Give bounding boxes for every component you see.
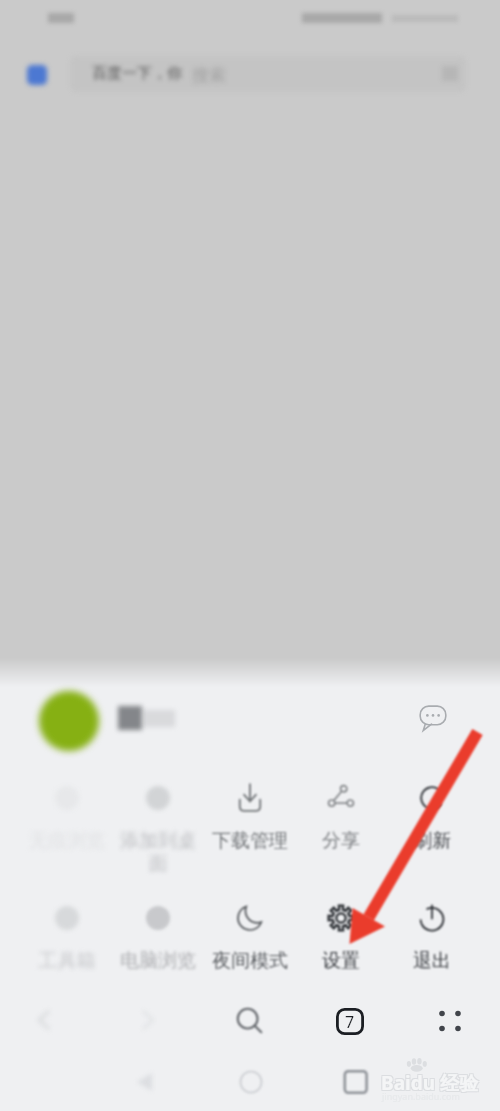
staticText: 7 <box>345 1011 355 1033</box>
button[interactable]: 夜间模式 <box>205 886 295 982</box>
button[interactable]: 刷新 <box>387 766 477 862</box>
button[interactable]: 添加到桌面 <box>113 766 203 862</box>
button[interactable]: Search <box>215 992 283 1048</box>
staticText: 夜间模式 <box>210 949 290 973</box>
staticText: 下载管理 <box>210 829 290 853</box>
staticText: 分享 <box>301 829 381 853</box>
button[interactable]: Search or type URL <box>70 56 466 92</box>
button[interactable]: 电脑浏览 <box>113 886 203 982</box>
button[interactable]: Messages <box>412 696 454 738</box>
staticText: 退出 <box>392 949 472 973</box>
button[interactable]: Menu <box>416 993 484 1049</box>
button[interactable]: 设置 <box>296 886 386 982</box>
button[interactable]: 下载管理 <box>205 766 295 862</box>
button[interactable]: 分享 <box>296 766 386 862</box>
staticText: Baidu 经验 <box>381 1070 478 1096</box>
button[interactable]: 工具箱 <box>22 886 112 982</box>
staticText: 设置 <box>301 949 381 973</box>
staticText: 电脑浏览 <box>118 949 198 973</box>
staticText: 添加到桌面 <box>118 829 198 876</box>
staticText: Baidu 经验 <box>382 1069 479 1095</box>
staticText: Baidu 经验 <box>382 1071 479 1097</box>
staticText: 工具箱 <box>27 949 107 973</box>
button[interactable]: 退出 <box>387 886 477 982</box>
button[interactable]: Browser home <box>27 65 47 85</box>
button[interactable]: Tabs, 7 open <box>316 993 384 1049</box>
button[interactable]: Account avatar <box>39 691 99 751</box>
staticText: 刷新 <box>392 829 472 853</box>
staticText: 百度一下，你就 <box>92 64 192 86</box>
staticText: 搜索 <box>192 65 226 85</box>
staticText: jingyan.baidu.com <box>382 1090 460 1102</box>
staticText: Baidu 经验 <box>380 1069 477 1095</box>
staticText: Baidu 经验 <box>380 1071 477 1097</box>
